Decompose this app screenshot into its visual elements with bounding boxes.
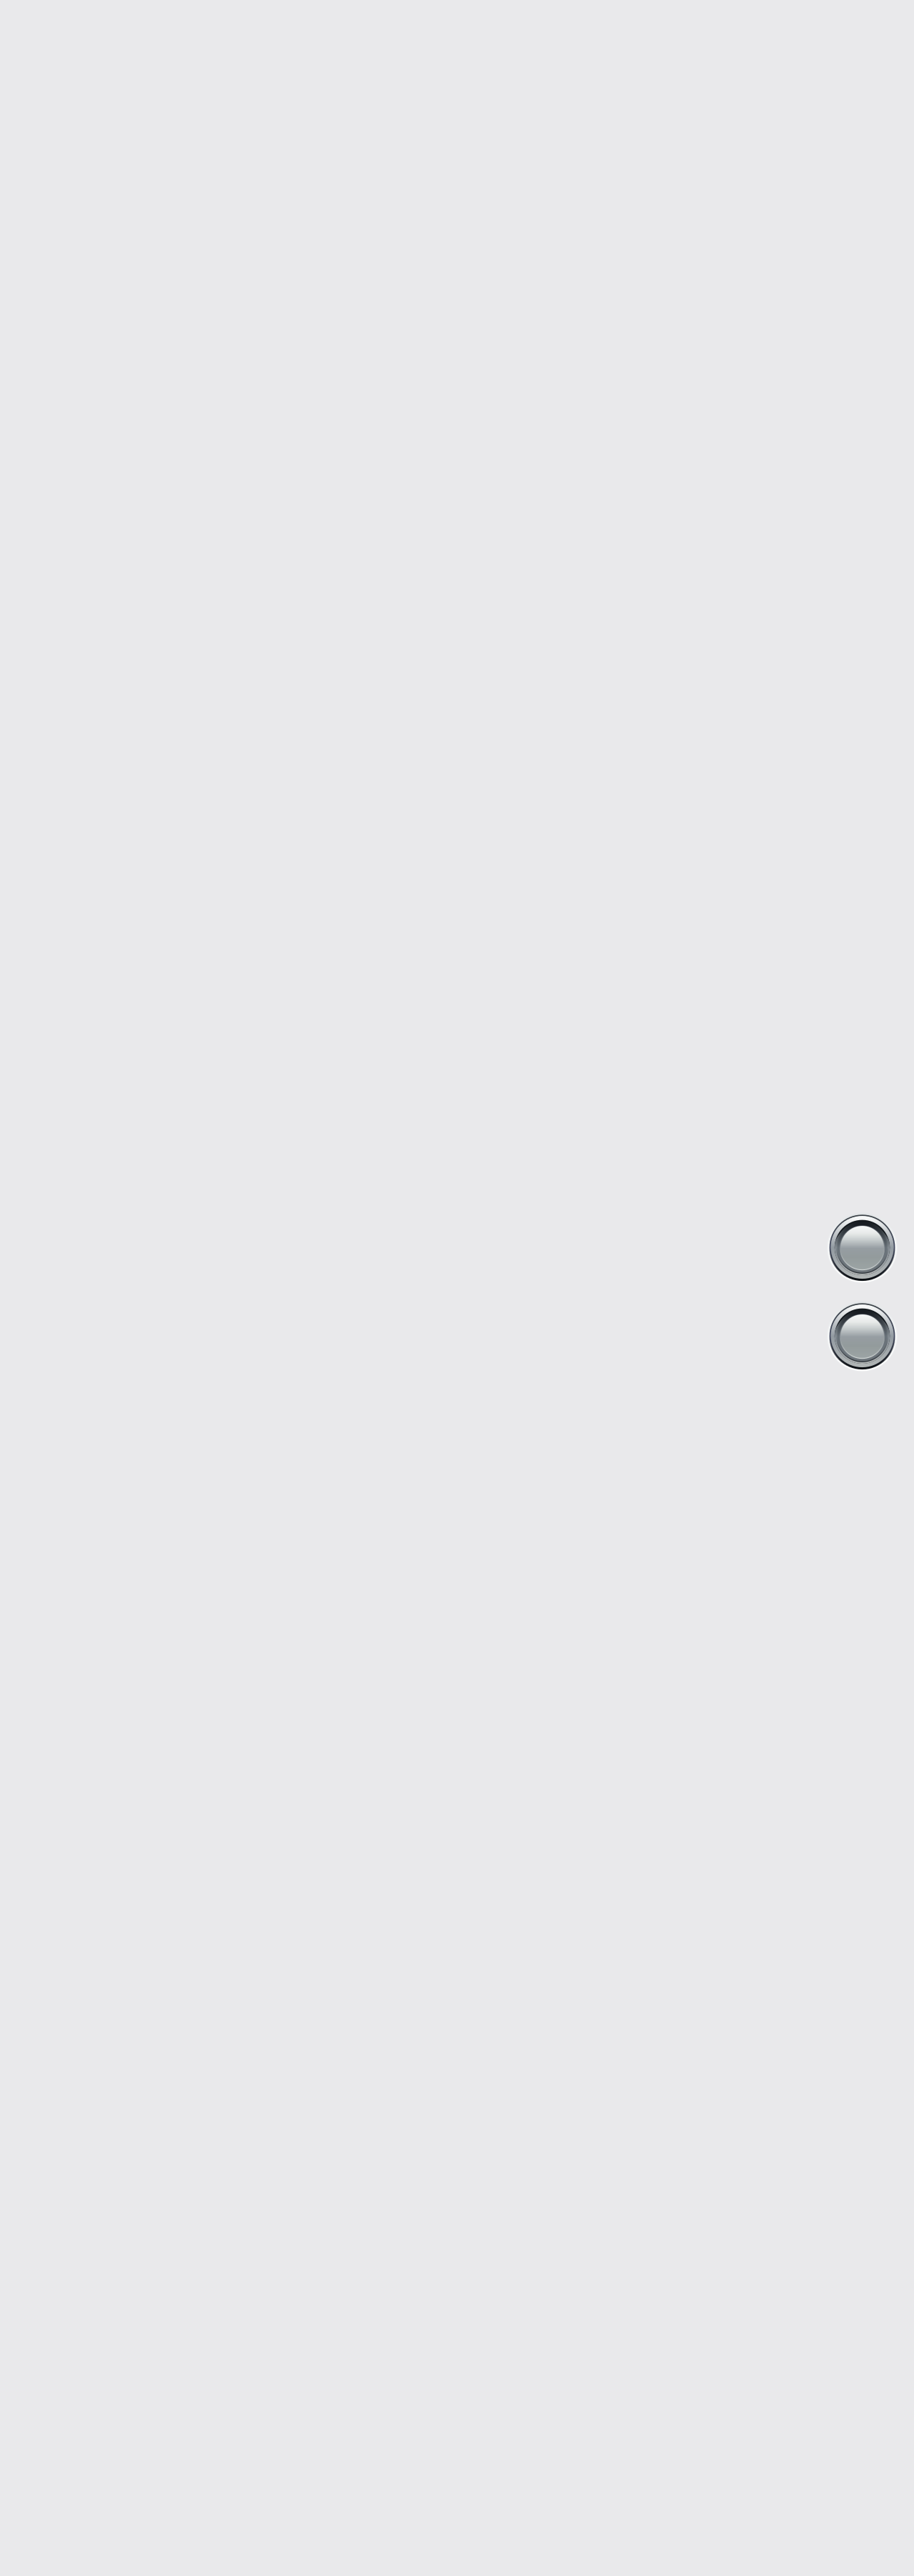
button[interactable]: Digital Crown bbox=[825, 1210, 900, 1285]
button[interactable]: Side Button bbox=[825, 1298, 900, 1374]
